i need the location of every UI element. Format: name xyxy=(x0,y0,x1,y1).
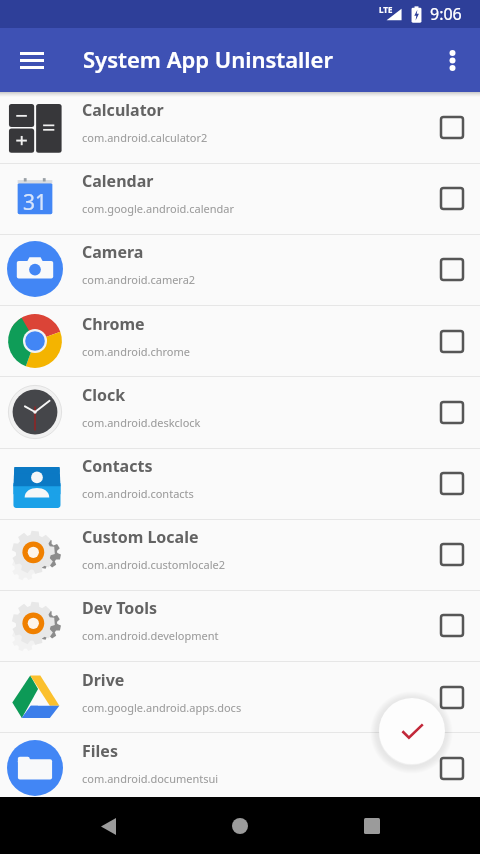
staticText: 9:06 xyxy=(430,3,462,25)
button[interactable]: Dev Tools xyxy=(0,590,480,660)
button[interactable]: Select Camera xyxy=(428,245,476,293)
button[interactable]: Select Dev Tools xyxy=(428,601,476,649)
staticText: System App Uninstaller xyxy=(83,44,333,74)
button[interactable]: Recents xyxy=(348,802,396,850)
button[interactable]: Select Contacts xyxy=(428,459,476,507)
button[interactable]: Select Calculator xyxy=(428,103,476,151)
button[interactable]: Select Files xyxy=(428,744,476,792)
staticText: Camera xyxy=(82,241,144,263)
button[interactable]: Back xyxy=(84,802,132,850)
staticText: Files xyxy=(82,740,118,762)
staticText: com.android.documentsui xyxy=(82,771,219,786)
button[interactable]: Home xyxy=(216,802,264,850)
button[interactable]: Files xyxy=(0,733,480,803)
button[interactable]: Select Custom Locale xyxy=(428,530,476,578)
staticText: 31 xyxy=(23,188,48,217)
staticText: Dev Tools xyxy=(82,597,158,619)
button[interactable]: More options xyxy=(424,32,480,88)
staticText: com.android.chrome xyxy=(82,344,190,359)
button[interactable]: Select Drive xyxy=(428,673,476,721)
button[interactable]: Contacts xyxy=(0,448,480,518)
button[interactable]: Camera xyxy=(0,234,480,304)
staticText: Drive xyxy=(82,669,125,691)
staticText: Calculator xyxy=(82,99,164,121)
button[interactable]: 31 xyxy=(0,163,480,233)
staticText: com.android.contacts xyxy=(82,486,194,501)
staticText: com.android.development xyxy=(82,628,219,643)
button[interactable]: Custom Locale xyxy=(0,519,480,589)
staticText: com.android.camera2 xyxy=(82,272,196,287)
staticText: Custom Locale xyxy=(82,526,199,548)
button[interactable]: Confirm uninstall xyxy=(379,698,445,764)
staticText: com.google.android.calendar xyxy=(82,201,235,216)
staticText: LTE xyxy=(379,4,393,15)
button[interactable]: Select Clock xyxy=(428,388,476,436)
button[interactable]: Select Calendar xyxy=(428,174,476,222)
staticText: com.android.deskclock xyxy=(82,415,201,430)
button[interactable]: Calculator xyxy=(0,92,480,162)
staticText: Contacts xyxy=(82,455,153,477)
staticText: Clock xyxy=(82,384,126,406)
staticText: Calendar xyxy=(82,170,154,192)
button[interactable]: Select Chrome xyxy=(428,317,476,365)
button[interactable]: Clock xyxy=(0,377,480,447)
button[interactable]: Open navigation drawer xyxy=(0,28,64,92)
staticText: com.google.android.apps.docs xyxy=(82,700,242,715)
button[interactable]: Chrome xyxy=(0,306,480,376)
staticText: Chrome xyxy=(82,313,145,335)
button[interactable]: Drive xyxy=(0,662,480,732)
staticText: com.android.customlocale2 xyxy=(82,557,225,572)
staticText: com.android.calculator2 xyxy=(82,130,208,145)
